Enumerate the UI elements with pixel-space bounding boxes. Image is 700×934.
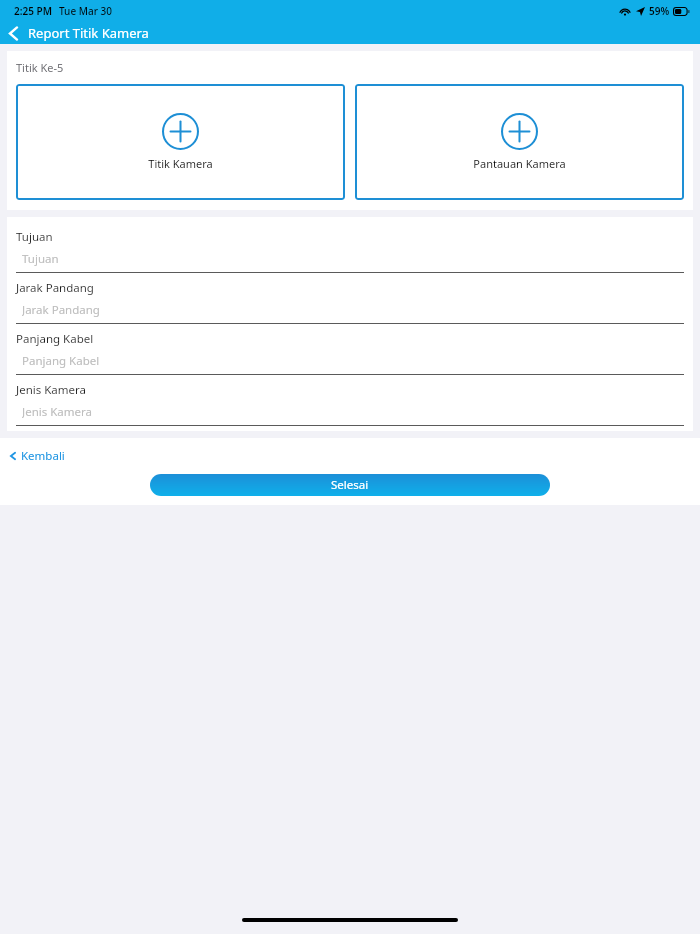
staticText: Panjang Kabel — [16, 331, 94, 347]
staticText: Jenis Kamera — [22, 404, 92, 419]
staticText: 2:25 PM — [14, 4, 52, 18]
staticText: Selesai — [331, 477, 369, 493]
button[interactable]: Pantauan Kamera — [355, 84, 684, 200]
button[interactable]: Selesai — [150, 474, 550, 496]
staticText: Report Titik Kamera — [28, 24, 149, 42]
staticText: 59% — [649, 4, 670, 18]
staticText: Jarak Pandang — [22, 302, 100, 317]
staticText: Tujuan — [16, 229, 53, 245]
staticText: Panjang Kabel — [22, 353, 100, 368]
button[interactable]: Titik Kamera — [16, 84, 345, 200]
button[interactable]: Panjang Kabel — [16, 353, 684, 368]
staticText: Pantauan Kamera — [473, 156, 566, 171]
staticText: Tue Mar 30 — [59, 4, 112, 18]
staticText: Jenis Kamera — [16, 382, 86, 398]
staticText: Kembali — [21, 448, 65, 464]
staticText: Titik Kamera — [148, 156, 213, 171]
staticText: Titik Ke-5 — [16, 60, 64, 75]
button[interactable]: Tujuan — [16, 251, 684, 266]
staticText: Jarak Pandang — [16, 280, 94, 296]
button[interactable]: Kembali — [0, 446, 75, 466]
button[interactable]: Jarak Pandang — [16, 302, 684, 317]
button[interactable]: Back — [0, 23, 27, 44]
button[interactable]: Jenis Kamera — [16, 404, 684, 419]
staticText: Tujuan — [22, 251, 59, 266]
